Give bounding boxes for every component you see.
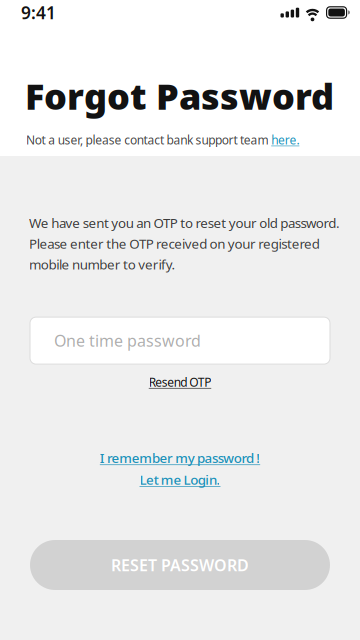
staticText: Not a user, please contact bank support … — [26, 132, 271, 148]
staticText: One time password — [54, 330, 201, 351]
staticText: I remember my password ! — [100, 449, 260, 467]
button[interactable]: One time password — [30, 317, 330, 364]
button[interactable]: I remember my password ! — [100, 449, 260, 467]
staticText: 9:41 — [21, 1, 56, 24]
button[interactable]: Resend OTP — [149, 374, 211, 390]
staticText: Resend OTP — [149, 374, 211, 390]
button[interactable]: here. — [271, 132, 299, 148]
button[interactable]: Let me Login. — [139, 471, 220, 488]
staticText: Let me Login. — [139, 471, 220, 488]
staticText: Forgot Password — [25, 72, 334, 120]
staticText: here. — [271, 132, 299, 148]
button[interactable]: RESET PASSWORD — [30, 540, 330, 590]
staticText: RESET PASSWORD — [111, 554, 249, 576]
staticText: We have sent you an OTP to reset your ol… — [29, 214, 340, 273]
